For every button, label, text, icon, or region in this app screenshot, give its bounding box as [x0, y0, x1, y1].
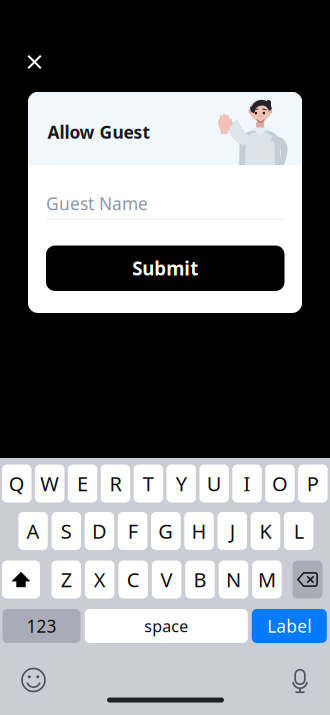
staticText: N	[226, 566, 241, 593]
button[interactable]: Shift	[2, 560, 40, 598]
staticText: A	[27, 518, 40, 544]
button[interactable]: A	[18, 512, 48, 550]
button[interactable]: M	[252, 560, 282, 598]
button[interactable]: P	[298, 464, 328, 502]
staticText: M	[258, 566, 276, 593]
staticText: U	[207, 470, 222, 497]
staticText: P	[307, 470, 319, 497]
button[interactable]: Label	[252, 609, 327, 643]
staticText: F	[128, 518, 138, 544]
button[interactable]: T	[134, 464, 163, 502]
staticText: B	[194, 566, 207, 593]
staticText: G	[158, 518, 173, 544]
button[interactable]: D	[85, 512, 114, 550]
staticText: R	[109, 470, 121, 497]
button[interactable]: N	[219, 560, 248, 598]
button[interactable]: B	[185, 560, 215, 598]
staticText: Guest Name	[46, 192, 148, 215]
button[interactable]: O	[265, 464, 295, 502]
staticText: Allow Guest	[47, 121, 150, 144]
button[interactable]: Submit	[46, 245, 284, 291]
staticText: J	[230, 518, 235, 544]
button[interactable]: Y	[166, 464, 196, 502]
button[interactable]: Close	[17, 46, 51, 78]
button[interactable]: F	[118, 512, 147, 550]
staticText: O	[272, 470, 288, 497]
staticText: Submit	[132, 256, 198, 281]
staticText: 123	[26, 614, 56, 637]
staticText: I	[244, 470, 251, 497]
button[interactable]: H	[184, 512, 214, 550]
button[interactable]: V	[152, 560, 181, 598]
staticText: D	[92, 518, 107, 544]
button[interactable]: Emoji keyboard	[17, 665, 49, 695]
staticText: Y	[176, 470, 187, 497]
button[interactable]: Q	[2, 464, 31, 502]
button[interactable]: 123	[2, 609, 80, 643]
button[interactable]: L	[284, 512, 313, 550]
staticText: S	[61, 518, 72, 544]
staticText: V	[161, 566, 173, 593]
staticText: Q	[9, 470, 25, 497]
staticText: Z	[61, 566, 72, 593]
button[interactable]: C	[118, 560, 148, 598]
staticText: space	[144, 615, 188, 637]
staticText: E	[77, 470, 88, 497]
button[interactable]: J	[217, 512, 247, 550]
button[interactable]: S	[51, 512, 81, 550]
staticText: H	[192, 518, 207, 544]
button[interactable]: X	[85, 560, 114, 598]
button[interactable]: U	[199, 464, 229, 502]
button[interactable]: Delete	[292, 560, 322, 598]
staticText: K	[259, 518, 271, 544]
staticText: W	[40, 470, 59, 497]
button[interactable]: space	[85, 609, 248, 643]
staticText: T	[143, 470, 154, 497]
button[interactable]: Dictation	[284, 662, 312, 692]
staticText: L	[294, 518, 304, 544]
staticText: Label	[267, 614, 311, 637]
staticText: C	[127, 566, 140, 593]
button[interactable]: K	[251, 512, 280, 550]
button[interactable]: G	[151, 512, 181, 550]
button[interactable]: Z	[51, 560, 81, 598]
staticText: X	[94, 566, 106, 593]
button[interactable]: R	[101, 464, 130, 502]
button[interactable]: I	[232, 464, 262, 502]
button[interactable]: W	[35, 464, 64, 502]
button[interactable]: E	[68, 464, 97, 502]
